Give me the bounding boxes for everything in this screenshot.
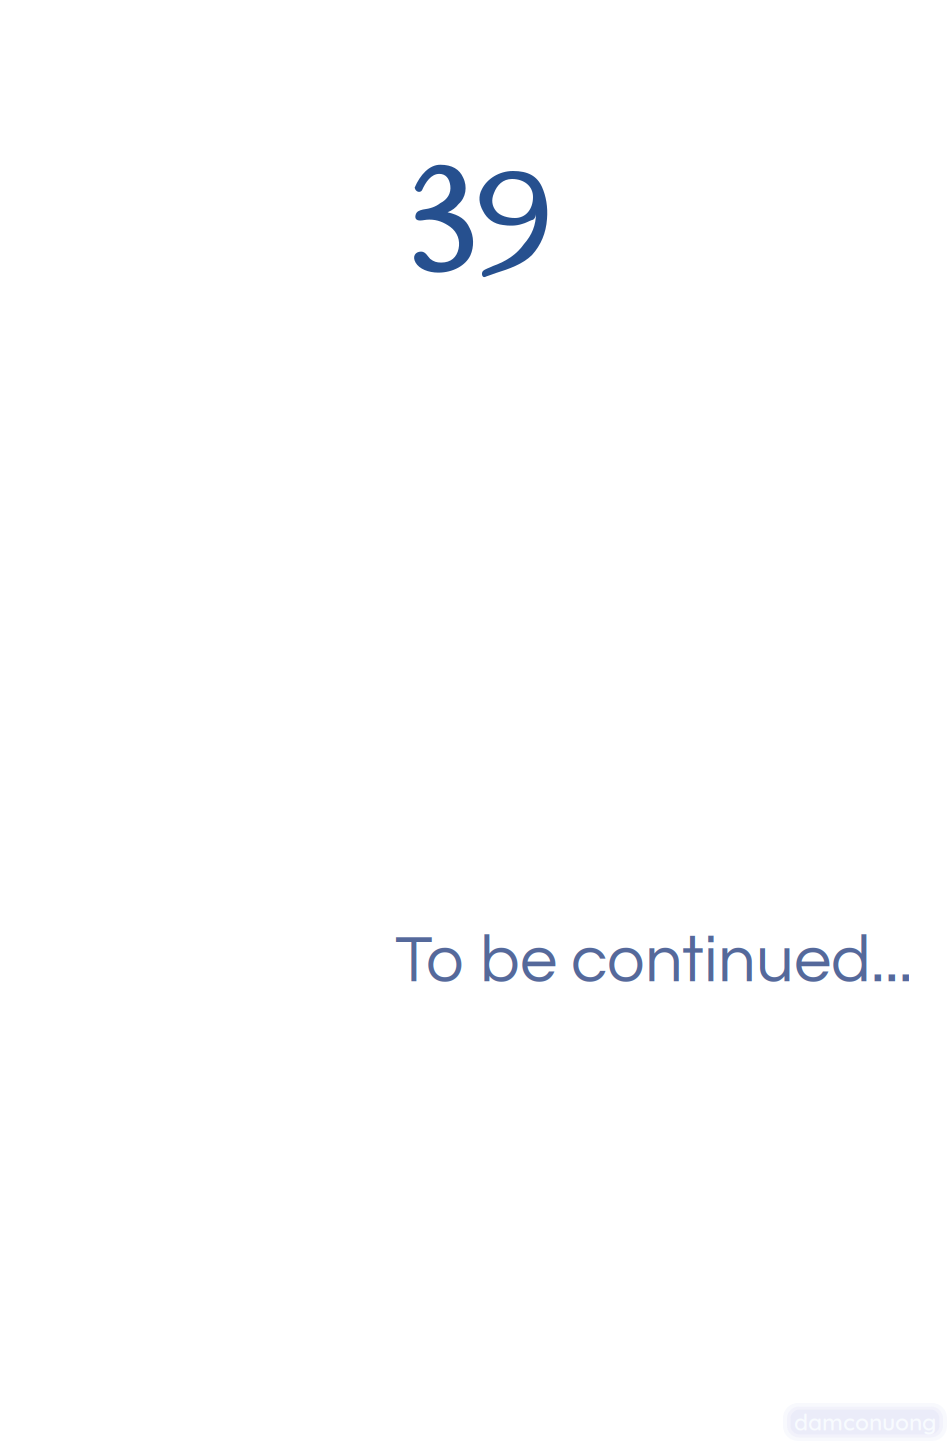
staticText: damconuong: [794, 1408, 936, 1436]
staticText: To be continued...: [395, 927, 913, 995]
button[interactable]: Chapter 39 — To be continued: [0, 0, 950, 1443]
